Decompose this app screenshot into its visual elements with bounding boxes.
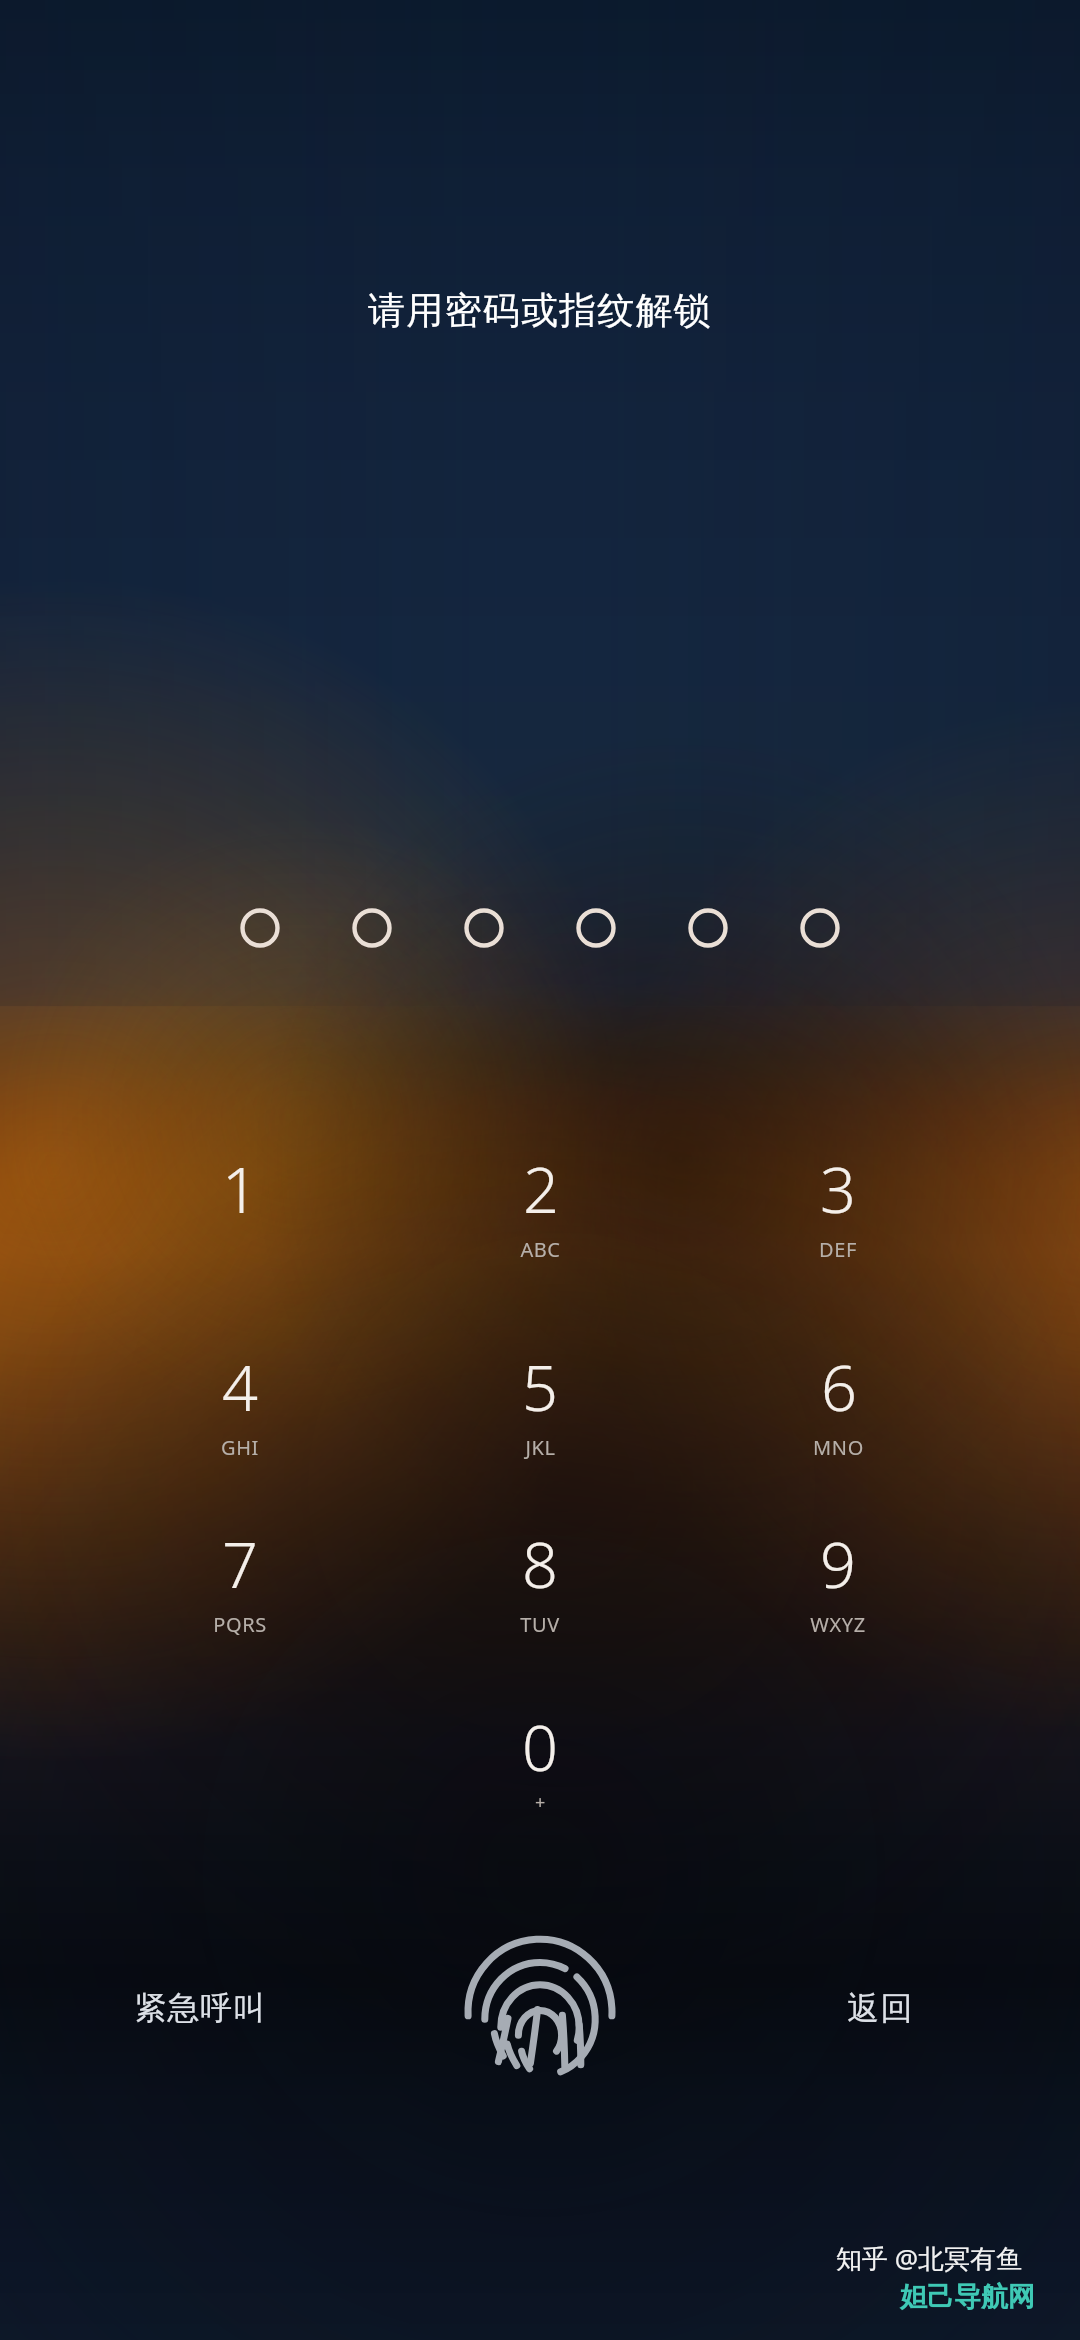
button[interactable]: 8	[450, 1521, 630, 1681]
staticText: ABC	[520, 1236, 561, 1263]
staticText: 3	[820, 1146, 856, 1232]
staticText: 知乎 @北冥有鱼	[836, 2240, 1023, 2276]
staticText: WXYZ	[810, 1611, 866, 1638]
staticText: 6	[821, 1344, 857, 1430]
staticText: 1	[222, 1146, 258, 1232]
button[interactable]: 3	[748, 1146, 928, 1306]
staticText: JKL	[525, 1434, 556, 1461]
button[interactable]: 5	[450, 1344, 630, 1504]
button[interactable]: 6	[748, 1344, 928, 1504]
button[interactable]: 7	[150, 1521, 330, 1681]
staticText: 8	[522, 1521, 558, 1607]
staticText: 7	[222, 1521, 258, 1607]
staticText: 4	[222, 1344, 258, 1430]
staticText: PQRS	[213, 1611, 267, 1638]
staticText: 0	[522, 1704, 558, 1790]
staticText: 请用密码或指纹解锁	[368, 287, 712, 334]
staticText: 妲己导航网	[900, 2280, 1035, 2314]
staticText: TUV	[520, 1611, 560, 1638]
staticText: MNO	[813, 1434, 864, 1461]
staticText: DEF	[819, 1236, 857, 1263]
staticText: GHI	[221, 1434, 259, 1461]
button[interactable]: 紧急呼叫	[60, 1960, 340, 2056]
staticText: 9	[820, 1521, 856, 1607]
button[interactable]: 2	[450, 1146, 630, 1306]
button[interactable]: 9	[748, 1521, 928, 1681]
staticText: 紧急呼叫	[134, 1988, 266, 2028]
button[interactable]: Unlock with fingerprint	[452, 1908, 628, 2084]
staticText: 5	[522, 1344, 558, 1430]
button[interactable]: 0	[450, 1704, 630, 1864]
button[interactable]: 返回	[740, 1960, 1020, 2056]
staticText: 返回	[847, 1988, 913, 2028]
button[interactable]: 1	[150, 1146, 330, 1306]
staticText: +	[535, 1790, 546, 1815]
button[interactable]: 4	[150, 1344, 330, 1504]
staticText: 2	[523, 1146, 559, 1232]
